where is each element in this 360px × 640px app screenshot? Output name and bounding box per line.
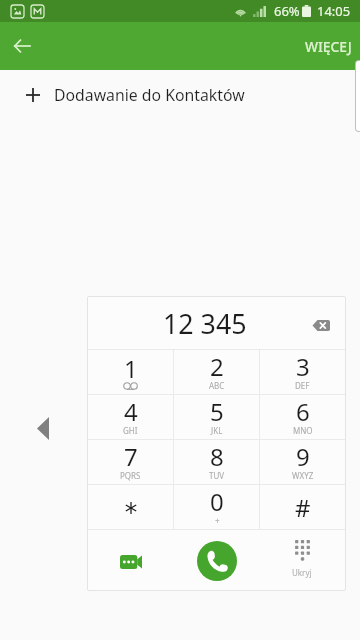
- staticText: 12 345: [163, 305, 247, 342]
- button[interactable]: 0: [174, 485, 259, 529]
- button[interactable]: #: [260, 485, 345, 529]
- button[interactable]: 9: [260, 440, 345, 484]
- staticText: Ukryj: [292, 567, 312, 578]
- button[interactable]: 8: [174, 440, 259, 484]
- staticText: ABC: [209, 380, 225, 391]
- staticText: 0: [210, 485, 224, 518]
- staticText: 8: [210, 440, 224, 473]
- staticText: Dodawanie do Kontaktów: [54, 84, 245, 106]
- button[interactable]: [88, 485, 173, 529]
- button[interactable]: 6: [260, 395, 345, 439]
- staticText: TUV: [209, 470, 225, 481]
- button[interactable]: 4: [88, 395, 173, 439]
- button[interactable]: 1: [88, 350, 173, 394]
- button[interactable]: 3: [260, 350, 345, 394]
- button[interactable]: Hide keypad: [259, 530, 345, 590]
- button[interactable]: 2: [174, 350, 259, 394]
- staticText: 4: [124, 395, 138, 428]
- staticText: WIĘCEJ: [305, 37, 352, 56]
- staticText: GHI: [123, 425, 138, 436]
- staticText: 14:05: [317, 2, 351, 20]
- staticText: WXYZ: [292, 470, 314, 481]
- staticText: PQRS: [120, 470, 141, 481]
- staticText: MNO: [293, 425, 313, 436]
- staticText: 7: [124, 440, 138, 473]
- button[interactable]: 7: [88, 440, 173, 484]
- staticText: DEF: [295, 380, 310, 391]
- staticText: 66%: [274, 2, 300, 20]
- staticText: 3: [296, 350, 310, 383]
- staticText: 6: [296, 395, 310, 428]
- button[interactable]: Dodawanie do Kontaktów: [0, 70, 360, 120]
- button[interactable]: Backspace: [303, 305, 339, 341]
- staticText: 2: [210, 350, 224, 383]
- button[interactable]: Call: [173, 530, 259, 590]
- staticText: 1: [124, 352, 138, 385]
- button[interactable]: 5: [174, 395, 259, 439]
- button[interactable]: Video call: [88, 530, 173, 590]
- staticText: 9: [296, 440, 310, 473]
- staticText: 5: [210, 395, 224, 428]
- staticText: +: [215, 515, 220, 526]
- button[interactable]: WIĘCEJ: [293, 22, 360, 70]
- button[interactable]: Back: [0, 22, 44, 70]
- staticText: #: [295, 491, 311, 524]
- staticText: JKL: [211, 425, 223, 436]
